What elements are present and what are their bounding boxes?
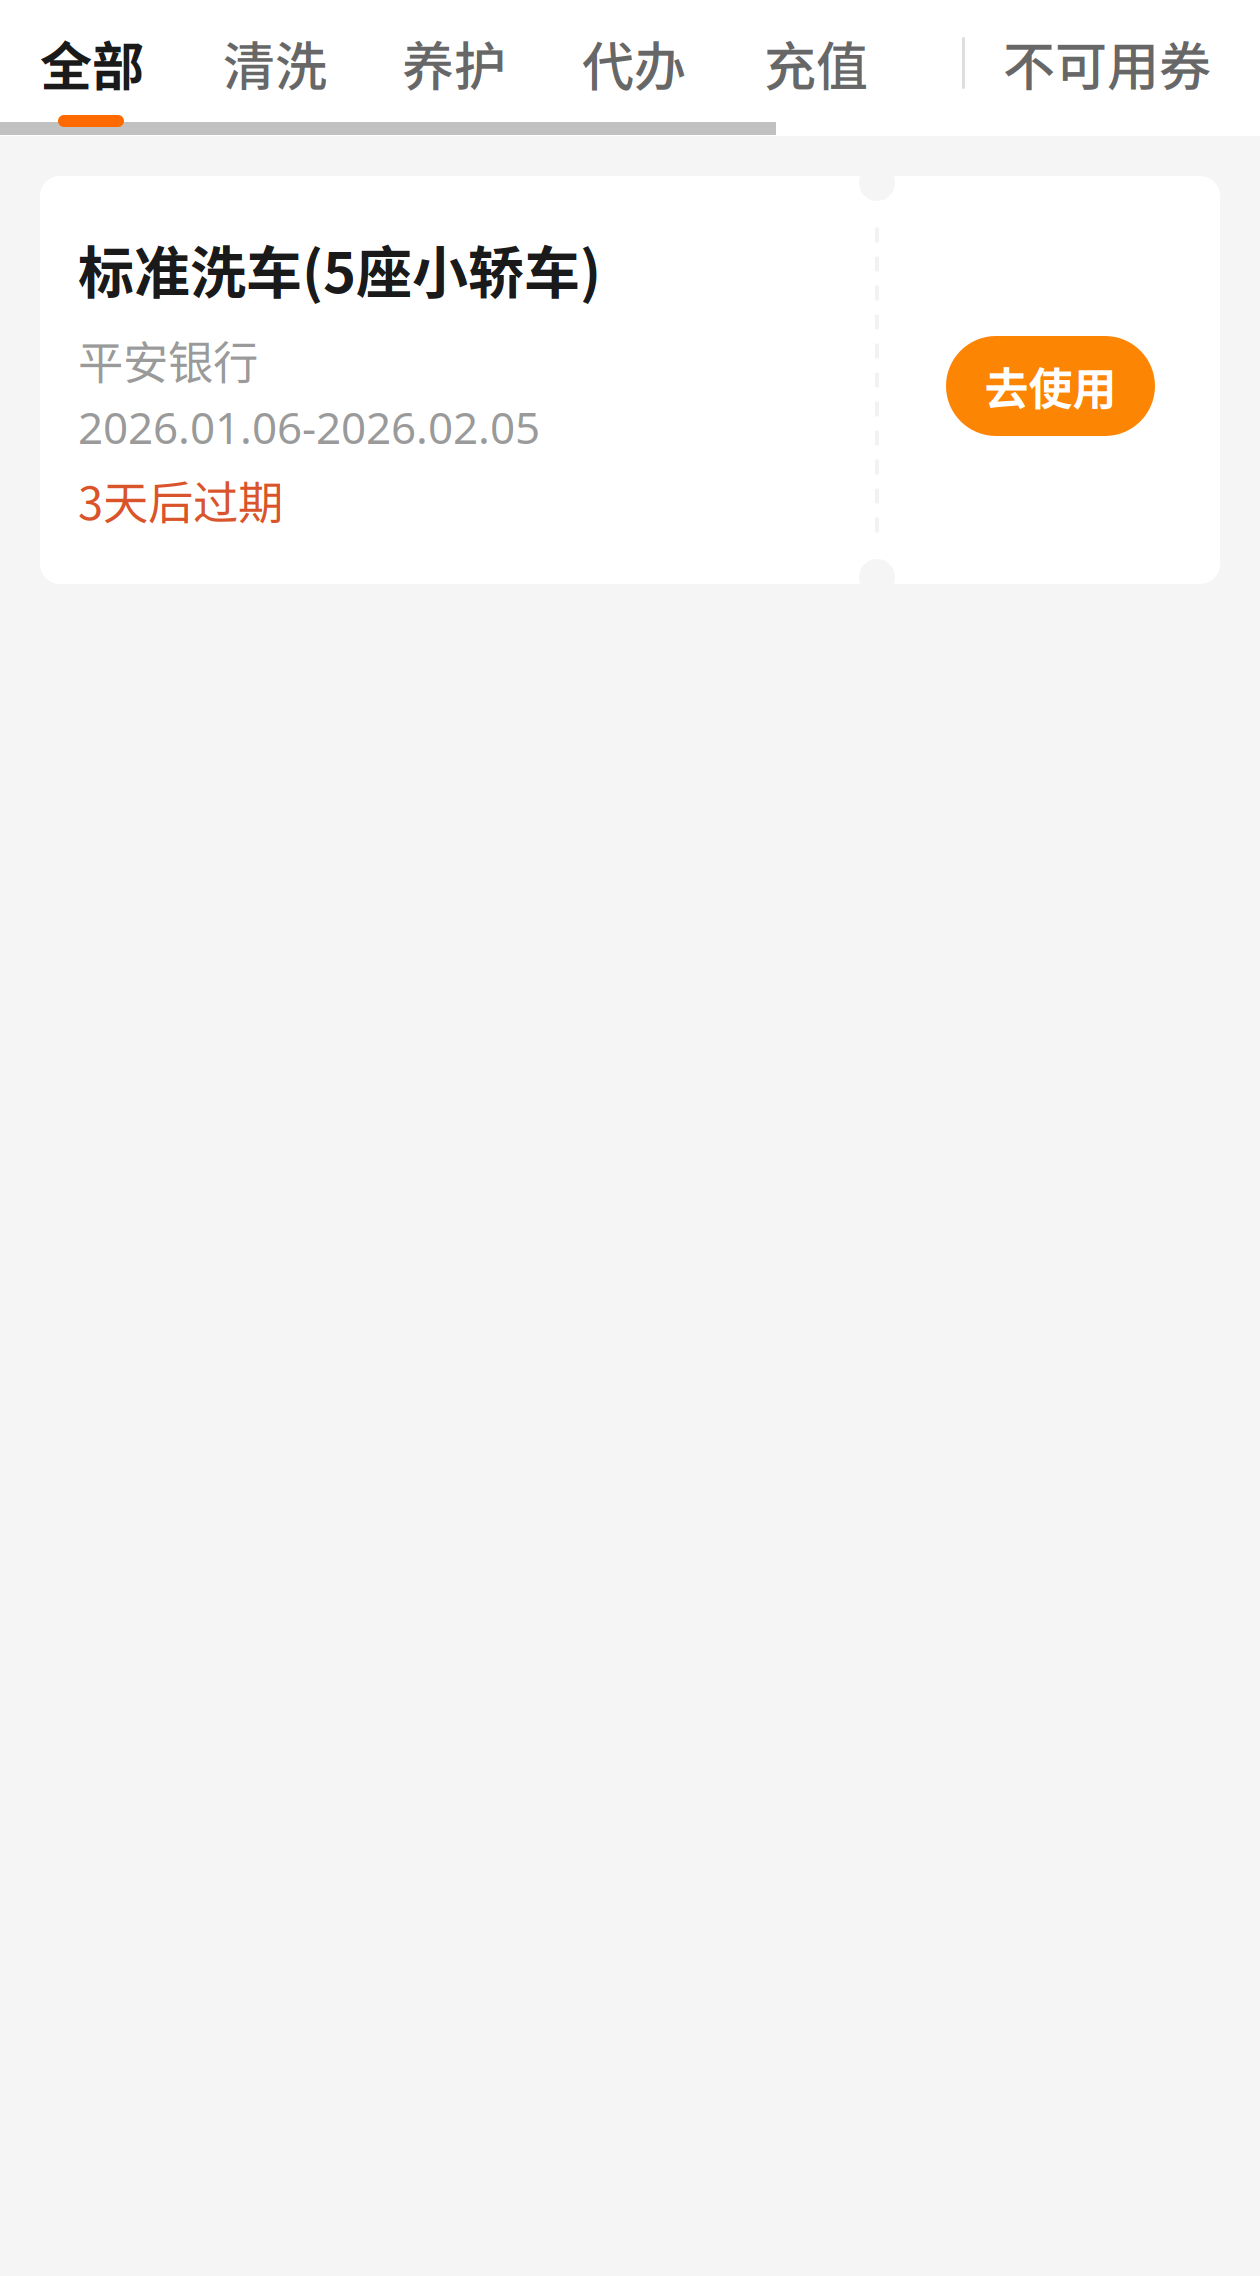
staticText: 3天后过期: [78, 467, 283, 533]
button[interactable]: 清洗: [223, 25, 327, 101]
button[interactable]: 代办: [582, 25, 686, 101]
staticText: 标准洗车(5座小轿车): [78, 228, 601, 309]
staticText: 清洗: [223, 25, 327, 101]
staticText: 2026.01.06-2026.02.05: [78, 398, 540, 456]
staticText: 代办: [582, 25, 686, 101]
button[interactable]: 全部: [40, 25, 144, 101]
staticText: 去使用: [984, 354, 1116, 418]
button[interactable]: 不可用券: [1003, 25, 1211, 101]
staticText: 平安银行: [78, 327, 258, 393]
staticText: 全部: [40, 25, 144, 101]
staticText: 充值: [764, 25, 868, 101]
staticText: 养护: [402, 25, 506, 101]
button[interactable]: 去使用: [946, 336, 1155, 436]
staticText: 不可用券: [1003, 25, 1211, 101]
button[interactable]: 充值: [764, 25, 868, 101]
button[interactable]: 养护: [402, 25, 506, 101]
